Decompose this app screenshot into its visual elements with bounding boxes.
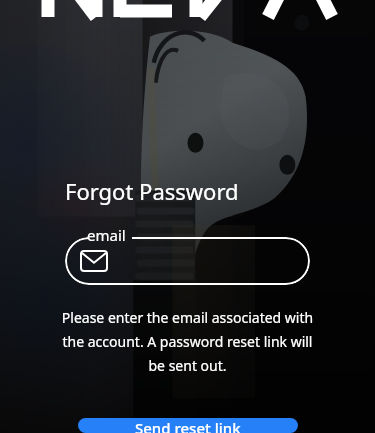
button[interactable]: Send reset link xyxy=(78,418,298,433)
other: Email xyxy=(80,250,108,272)
staticText: email xyxy=(87,225,126,245)
staticText: Send reset link xyxy=(135,418,241,433)
button[interactable]: Email xyxy=(65,237,310,285)
staticText: Please enter the email associated with t… xyxy=(58,308,317,375)
staticText: Forgot Password xyxy=(65,176,239,206)
